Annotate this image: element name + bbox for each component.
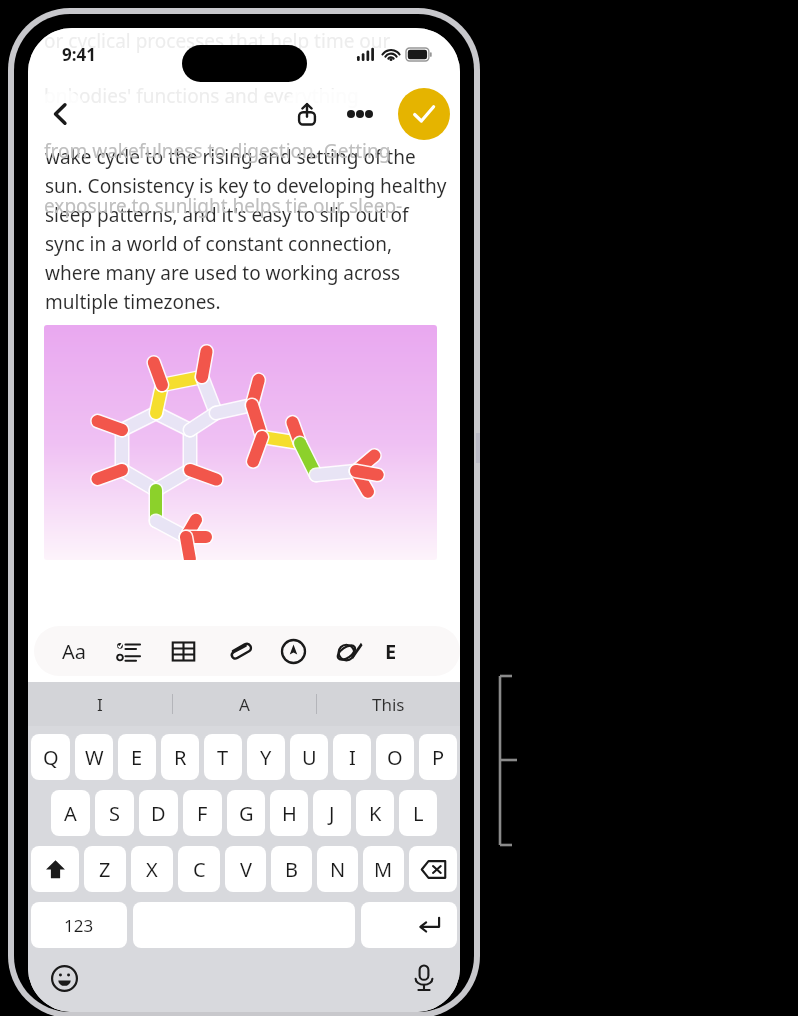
button[interactable]: E bbox=[118, 734, 156, 780]
staticText: This bbox=[372, 693, 405, 716]
staticText: X bbox=[146, 856, 158, 883]
button[interactable]: B bbox=[271, 846, 312, 892]
button[interactable]: D bbox=[139, 790, 178, 836]
button[interactable]: Text format bbox=[46, 626, 101, 676]
staticText: B bbox=[285, 856, 298, 883]
button[interactable]: L bbox=[399, 790, 437, 836]
staticText: sun. Consistency is key to developing he… bbox=[45, 173, 447, 199]
staticText: U bbox=[302, 744, 317, 771]
staticText: I bbox=[349, 744, 356, 771]
button[interactable]: S bbox=[95, 790, 134, 836]
staticText: from wakefulness to digestion. Getting bbox=[44, 138, 391, 164]
staticText: T bbox=[217, 744, 229, 771]
button[interactable]: U bbox=[290, 734, 328, 780]
button[interactable]: Dictate bbox=[402, 956, 446, 1000]
staticText: C bbox=[193, 856, 206, 883]
button[interactable]: V bbox=[225, 846, 266, 892]
button[interactable]: Scribble bbox=[321, 626, 376, 676]
button[interactable]: T bbox=[204, 734, 242, 780]
button[interactable]: Attach bbox=[211, 626, 266, 676]
staticText: Q bbox=[43, 744, 59, 771]
staticText: Aa bbox=[62, 638, 86, 665]
staticText: multiple timezones. bbox=[45, 289, 221, 315]
button[interactable]: Shift bbox=[31, 846, 79, 892]
staticText: D bbox=[151, 800, 166, 827]
button[interactable]: Share bbox=[282, 89, 332, 139]
staticText: sync in a world of constant connection, bbox=[45, 231, 393, 257]
button[interactable]: Table bbox=[156, 626, 211, 676]
button[interactable]: A bbox=[173, 682, 316, 726]
staticText: V bbox=[240, 856, 252, 883]
button[interactable]: Checklist bbox=[101, 626, 156, 676]
button[interactable]: Markup bbox=[266, 626, 321, 676]
button[interactable]: G bbox=[227, 790, 265, 836]
staticText: bnbodies' functions and everything bbox=[44, 83, 359, 109]
staticText: N bbox=[330, 856, 346, 883]
staticText: K bbox=[369, 800, 382, 827]
button[interactable]: M bbox=[363, 846, 404, 892]
staticText: 123 bbox=[64, 914, 94, 937]
staticText: where many are used to working across bbox=[45, 260, 401, 286]
staticText: wake cycle to the rising and setting of … bbox=[45, 144, 416, 170]
staticText: I bbox=[97, 693, 103, 716]
staticText: P bbox=[432, 744, 445, 771]
staticText: J bbox=[329, 800, 335, 827]
button[interactable]: K bbox=[356, 790, 394, 836]
button[interactable]: A bbox=[51, 790, 90, 836]
staticText: A bbox=[239, 693, 250, 716]
button[interactable]: Q bbox=[31, 734, 70, 780]
button[interactable]: Y bbox=[247, 734, 285, 780]
staticText: E bbox=[385, 638, 397, 665]
staticText: E bbox=[131, 744, 143, 771]
button[interactable]: H bbox=[270, 790, 308, 836]
button[interactable]: This bbox=[317, 682, 460, 726]
button[interactable]: W bbox=[75, 734, 113, 780]
button[interactable]: Done bbox=[398, 88, 450, 140]
staticText: or cyclical processes that help time our bbox=[44, 28, 391, 54]
button[interactable]: More options bbox=[332, 89, 388, 139]
staticText: H bbox=[282, 800, 297, 827]
button[interactable]: Return bbox=[361, 902, 457, 948]
staticText: W bbox=[85, 744, 104, 771]
staticText: sleep patterns, and it's easy to slip ou… bbox=[45, 202, 409, 228]
staticText: Y bbox=[260, 744, 272, 771]
staticText: F bbox=[197, 800, 208, 827]
staticText: S bbox=[109, 800, 120, 827]
staticText: exposure to sunlight helps tie our sleep… bbox=[44, 193, 403, 219]
button[interactable]: O bbox=[376, 734, 414, 780]
button[interactable]: R bbox=[161, 734, 199, 780]
button[interactable]: N bbox=[317, 846, 358, 892]
staticText: A bbox=[64, 800, 77, 827]
button[interactable]: F bbox=[183, 790, 222, 836]
button[interactable]: P bbox=[419, 734, 457, 780]
button[interactable]: I bbox=[333, 734, 371, 780]
button[interactable]: X bbox=[131, 846, 173, 892]
staticText: R bbox=[174, 744, 187, 771]
button[interactable]: C bbox=[178, 846, 220, 892]
staticText: L bbox=[413, 800, 424, 827]
staticText: G bbox=[239, 800, 254, 827]
button[interactable]: 123 bbox=[31, 902, 127, 948]
button[interactable]: Back bbox=[36, 89, 86, 139]
staticText: Z bbox=[99, 856, 111, 883]
staticText: 9:41 bbox=[62, 43, 96, 66]
staticText: M bbox=[374, 856, 393, 883]
button[interactable]: Z bbox=[84, 846, 126, 892]
staticText: O bbox=[387, 744, 403, 771]
button[interactable]: I bbox=[28, 682, 172, 726]
button[interactable]: Backspace bbox=[409, 846, 457, 892]
button[interactable]: J bbox=[313, 790, 351, 836]
button[interactable]: Emoji bbox=[42, 956, 86, 1000]
